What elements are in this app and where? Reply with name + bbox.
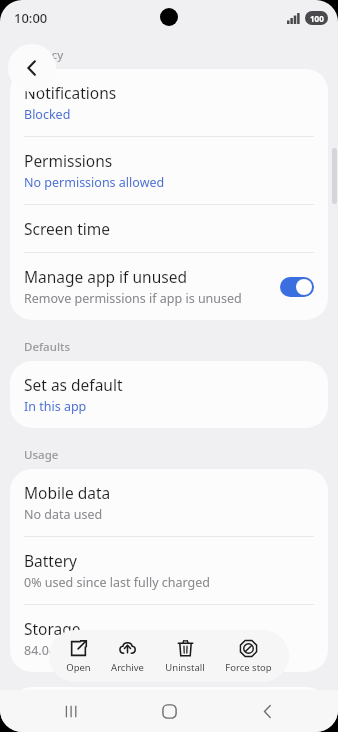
staticText: Uninstall xyxy=(165,661,205,674)
button[interactable]: Force stop xyxy=(221,637,276,676)
button[interactable]: Manage app if unused xyxy=(10,253,328,320)
staticText: Manage app if unused xyxy=(24,266,187,287)
button[interactable]: Storage xyxy=(10,605,328,672)
button[interactable]: Battery xyxy=(10,537,328,604)
staticText: 84.04 MB used in Internal storage xyxy=(24,642,223,659)
staticText: Defaults xyxy=(24,339,70,355)
staticText: In this app xyxy=(24,398,87,415)
button[interactable]: Back xyxy=(241,690,293,732)
staticText: Privacy xyxy=(24,47,64,63)
staticText: Remove permissions if app is unused xyxy=(24,290,242,307)
staticText: Notifications xyxy=(24,82,117,103)
button[interactable]: Back xyxy=(8,44,56,92)
staticText: Permissions xyxy=(24,150,113,171)
staticText: 100 xyxy=(310,13,324,24)
staticText: Open xyxy=(66,661,91,674)
button[interactable]: Recents xyxy=(46,690,98,732)
staticText: No data used xyxy=(24,506,103,523)
staticText: Set as default xyxy=(24,374,123,395)
button[interactable]: Archive xyxy=(107,637,148,676)
button[interactable]: Open xyxy=(62,637,95,676)
staticText: Mobile data xyxy=(24,482,111,503)
staticText: Archive xyxy=(111,661,144,674)
button[interactable]: Home xyxy=(143,690,195,732)
button[interactable]: Set as default xyxy=(10,361,328,428)
staticText: App details xyxy=(24,700,105,719)
staticText: Usage xyxy=(24,447,59,463)
staticText: Blocked xyxy=(24,106,71,123)
button[interactable]: Uninstall xyxy=(161,637,209,676)
staticText: Screen time xyxy=(24,218,110,239)
staticText: Force stop xyxy=(225,661,272,674)
staticText: Storage xyxy=(24,618,81,639)
button[interactable]: Mobile data xyxy=(10,469,328,536)
staticText: 10:00 xyxy=(14,9,48,27)
staticText: No permissions allowed xyxy=(24,174,165,191)
button[interactable]: Notifications xyxy=(10,69,328,136)
staticText: Battery xyxy=(24,550,78,571)
staticText: 0% used since last fully charged xyxy=(24,574,211,591)
button[interactable]: Screen time xyxy=(10,205,328,252)
button[interactable]: Permissions xyxy=(10,137,328,204)
button[interactable]: App details xyxy=(10,687,328,732)
